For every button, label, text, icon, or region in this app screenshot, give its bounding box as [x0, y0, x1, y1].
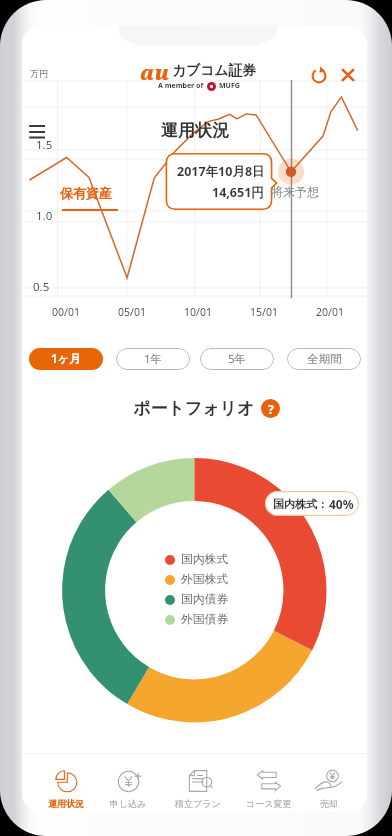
staticText: 1年	[144, 351, 163, 367]
staticText: 国内株式：	[273, 497, 328, 511]
staticText: 将来予想	[271, 184, 319, 199]
staticText: MUFG	[219, 81, 240, 91]
staticText: 国内債券	[181, 592, 229, 607]
button[interactable]: Close	[336, 63, 360, 87]
button[interactable]: コース変更	[236, 755, 302, 812]
button[interactable]: 運用状況	[33, 755, 99, 812]
staticText: カブコム証券	[172, 62, 257, 79]
staticText: 05/01	[118, 305, 146, 319]
staticText: 売却	[320, 798, 338, 809]
staticText: au	[140, 59, 170, 86]
staticText: 外国債券	[181, 612, 229, 627]
staticText: 0.5	[33, 279, 50, 295]
staticText: 積立プラン	[175, 798, 221, 809]
staticText: 万円	[30, 68, 48, 79]
button[interactable]: 申し込み	[95, 755, 161, 812]
staticText: 運用状況	[161, 120, 229, 141]
staticText: 00/01	[52, 305, 80, 319]
button[interactable]: 1年	[116, 348, 190, 370]
staticText: A member of	[158, 81, 204, 91]
staticText: 全期間	[307, 352, 342, 366]
button[interactable]: Menu	[24, 118, 52, 142]
staticText: 1.0	[36, 208, 53, 224]
staticText: 1.5	[36, 137, 53, 153]
button[interactable]: 1ヶ月	[29, 348, 103, 370]
staticText: 10/01	[184, 305, 212, 319]
staticText: 14,651円	[212, 184, 264, 201]
staticText: 40%	[329, 496, 354, 512]
button[interactable]: Refresh	[307, 64, 331, 88]
staticText: 15/01	[250, 305, 278, 319]
staticText: 20/01	[316, 305, 344, 319]
staticText: 運用状況	[48, 798, 84, 809]
button[interactable]: Help	[261, 399, 280, 418]
staticText: コース変更	[246, 798, 292, 809]
button[interactable]: 全期間	[287, 348, 361, 370]
button[interactable]: 積立プラン	[165, 755, 231, 812]
staticText: 1ヶ月	[51, 351, 81, 367]
staticText: 2017年10月8日	[177, 163, 265, 180]
staticText: 保有資産	[60, 185, 112, 201]
staticText: 国内株式	[181, 552, 229, 567]
staticText: ?	[268, 401, 274, 417]
staticText: ポートフォリオ	[133, 398, 255, 419]
staticText: 申し込み	[110, 798, 147, 809]
staticText: 外国株式	[181, 572, 229, 587]
staticText: 5年	[228, 351, 247, 367]
button[interactable]: 5年	[200, 348, 274, 370]
button[interactable]: 売却	[296, 755, 362, 812]
